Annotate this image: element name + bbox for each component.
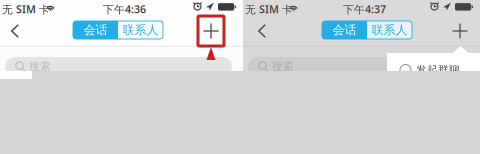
button[interactable]: 新建 xyxy=(446,16,474,46)
button[interactable]: 新建 xyxy=(197,16,225,46)
button[interactable]: 搜索 xyxy=(248,57,470,76)
staticText: 会话 xyxy=(83,23,107,37)
staticText: 无 SIM 卡 xyxy=(2,2,50,16)
button[interactable]: 返回 xyxy=(2,16,28,46)
button[interactable]: 返回 xyxy=(249,16,275,46)
staticText: 发起群聊 xyxy=(416,63,460,76)
staticText: 无 SIM 卡 xyxy=(245,2,293,16)
staticText: 搜索 xyxy=(29,60,51,73)
staticText: 会话 xyxy=(332,23,356,37)
staticText: 联系人 xyxy=(371,23,407,37)
staticText: 搜索 xyxy=(272,60,294,73)
staticText: 下午4:36 xyxy=(103,2,146,16)
button[interactable]: 发起群聊 xyxy=(387,59,480,81)
button[interactable]: 搜索 xyxy=(5,57,232,76)
staticText: 下午4:37 xyxy=(343,2,386,16)
staticText: 联系人 xyxy=(122,23,158,37)
